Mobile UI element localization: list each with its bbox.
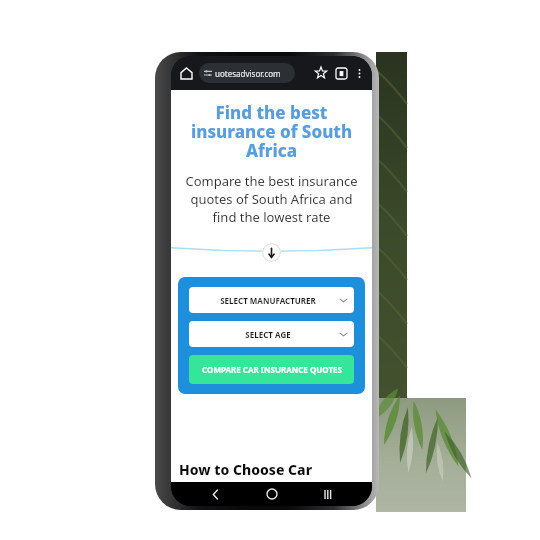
staticText: COMPARE CAR INSURANCE QUOTES: [202, 364, 342, 375]
button[interactable]: uotesadvisor.com: [199, 63, 295, 83]
button[interactable]: COMPARE CAR INSURANCE QUOTES: [189, 355, 354, 384]
staticText: How to Choose Car: [179, 460, 372, 479]
staticText: Compare the best insurance quotes of Sou…: [182, 172, 361, 226]
staticText: Find the best insurance of South Africa: [189, 101, 354, 162]
staticText: SELECT MANUFACTURER: [196, 295, 340, 306]
button[interactable]: Tabs: [331, 63, 351, 83]
button[interactable]: More options: [351, 65, 367, 81]
button[interactable]: SELECT AGE: [189, 321, 354, 347]
button[interactable]: Back: [203, 482, 227, 506]
staticText: SELECT AGE: [196, 329, 340, 340]
staticText: uotesadvisor.com: [215, 68, 281, 79]
button[interactable]: Recent apps: [316, 482, 340, 506]
button[interactable]: Bookmark: [311, 63, 331, 83]
button[interactable]: Home: [260, 482, 284, 506]
button[interactable]: SELECT MANUFACTURER: [189, 287, 354, 313]
button[interactable]: Scroll down: [262, 243, 281, 262]
button[interactable]: Home: [176, 63, 196, 83]
